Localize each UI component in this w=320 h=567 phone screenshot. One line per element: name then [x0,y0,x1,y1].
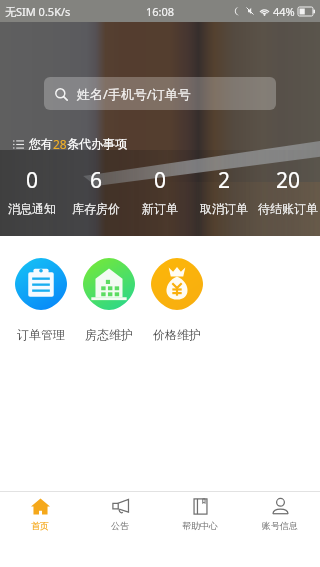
staticText: 44% [273,4,295,19]
button[interactable]: 0 [0,166,64,216]
staticText: 价格维护 [153,327,201,342]
staticText: 房态维护 [85,327,133,342]
button[interactable]: 20 [256,166,320,216]
button[interactable]: 价格维护 [143,258,211,342]
button[interactable]: 您有 [13,136,320,152]
staticText: 您有 [29,136,53,151]
button[interactable]: 房态维护 [75,258,143,342]
button[interactable]: 帮助中心 [160,492,240,567]
staticText: 库存房价 [72,201,120,216]
staticText: 6 [90,166,103,195]
button[interactable]: 姓名/手机号/订单号 [44,77,276,110]
staticText: 姓名/手机号/订单号 [77,85,191,103]
staticText: 订单管理 [17,327,65,342]
button[interactable]: 6 [64,166,128,216]
button[interactable]: 公告 [80,492,160,567]
staticText: 首页 [31,520,49,531]
staticText: 账号信息 [262,520,298,531]
staticText: 无SIM 0.5K/s [5,4,71,19]
staticText: 帮助中心 [182,520,218,531]
button[interactable]: 0 [128,166,192,216]
button[interactable]: 订单管理 [7,258,75,342]
button[interactable]: 账号信息 [240,492,320,567]
button[interactable]: 首页 [0,492,80,567]
staticText: 2 [218,166,231,195]
staticText: 28 [53,136,67,152]
staticText: 16:08 [146,4,175,19]
button[interactable]: 2 [192,166,256,216]
staticText: 0 [26,166,39,195]
staticText: 取消订单 [200,201,248,216]
staticText: 0 [154,166,167,195]
staticText: 条代办事项 [67,136,127,151]
staticText: 新订单 [142,201,178,216]
staticText: 消息通知 [8,201,56,216]
staticText: 20 [276,166,301,195]
staticText: 待结账订单 [258,201,318,216]
staticText: 公告 [111,520,129,531]
